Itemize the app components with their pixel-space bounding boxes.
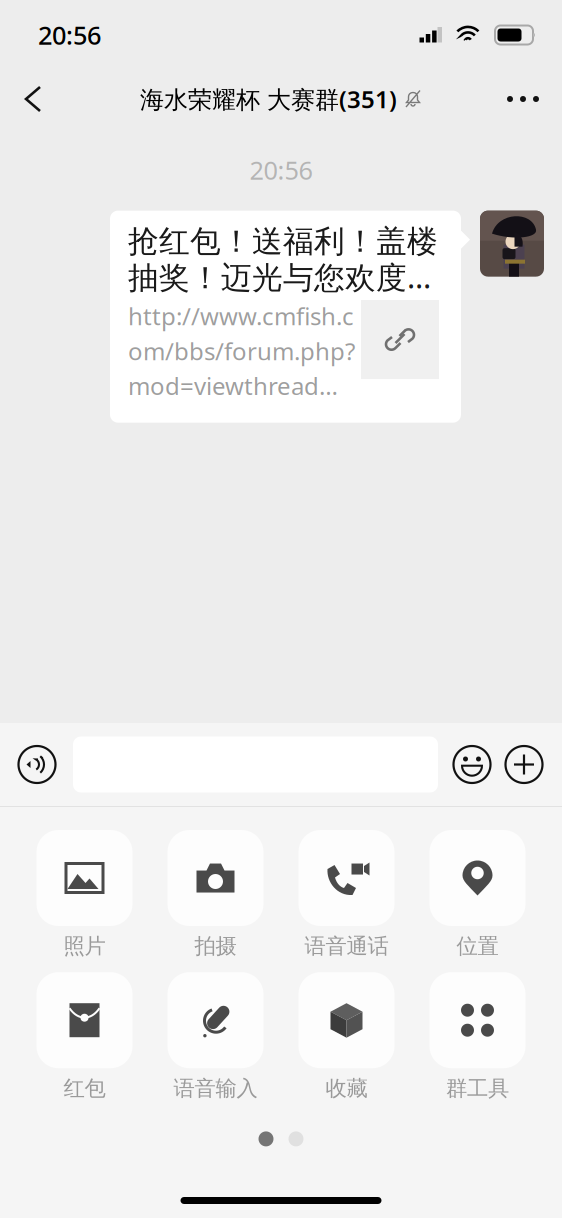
button[interactable]: 照片 — [36, 830, 132, 959]
staticText: 位置 — [456, 933, 498, 959]
button[interactable]: Emoji — [452, 744, 492, 784]
staticText: 照片 — [63, 933, 105, 959]
staticText: 红包 — [63, 1075, 105, 1101]
staticText: 语音通话 — [304, 933, 388, 959]
staticText: 抢红包！送福利！盖楼 抽奖！迈光与您欢度… — [128, 223, 438, 297]
button[interactable]: 红包 — [36, 972, 132, 1101]
staticText: 收藏 — [325, 1075, 367, 1101]
staticText: http://www.cmfish.c om/bbs/forum.php? mo… — [128, 300, 355, 402]
staticText: 群工具 — [446, 1075, 509, 1101]
staticText: 海水荣耀杯 大赛群(351) — [140, 83, 397, 115]
button[interactable]: 抢红包！送福利！盖楼 抽奖！迈光与您欢度… — [110, 211, 461, 423]
button[interactable]: 位置 — [429, 830, 525, 959]
button[interactable]: 收藏 — [298, 972, 394, 1101]
button[interactable]: 群工具 — [429, 972, 525, 1101]
staticText: 语音输入 — [173, 1075, 257, 1101]
button[interactable]: 语音通话 — [298, 830, 394, 959]
button[interactable]: More — [496, 72, 550, 126]
staticText: 20:56 — [249, 153, 312, 187]
button[interactable]: Voice message — [17, 744, 57, 784]
button[interactable]: More options — [504, 744, 544, 784]
button[interactable]: Back — [6, 72, 60, 126]
button[interactable]: 拍摄 — [167, 830, 263, 959]
staticText: 20:56 — [38, 18, 101, 52]
staticText: 拍摄 — [194, 933, 236, 959]
button[interactable]: 语音输入 — [167, 972, 263, 1101]
